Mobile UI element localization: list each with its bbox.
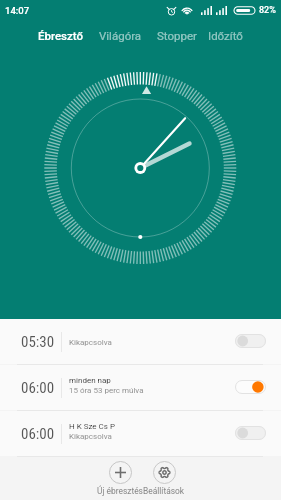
staticText: 05:30 — [21, 333, 55, 351]
staticText: 06:00 — [21, 379, 55, 397]
button[interactable]: Alarm enabled — [235, 380, 266, 394]
button[interactable]: Ébresztő — [37, 26, 85, 45]
button[interactable]: Settings — [143, 457, 185, 496]
button[interactable]: 06:00 — [0, 365, 281, 410]
staticText: Beállítások — [143, 486, 185, 496]
other: New alarm — [109, 461, 132, 484]
other: Settings — [153, 461, 176, 484]
staticText: 06:00 — [21, 425, 55, 443]
button[interactable]: New alarm — [97, 457, 143, 496]
staticText: minden nap — [69, 376, 111, 385]
staticText: Kikapcsolva — [69, 338, 112, 347]
button[interactable]: Stopper — [156, 26, 198, 45]
staticText: 14:07 — [5, 5, 30, 16]
staticText: Világóra — [99, 29, 142, 42]
staticText: 82% — [259, 5, 276, 16]
staticText: Kikapcsolva — [69, 432, 112, 441]
button[interactable]: Időzítő — [207, 26, 244, 45]
button[interactable]: Világóra — [98, 26, 143, 45]
button[interactable]: Alarm disabled — [235, 334, 266, 348]
button[interactable]: 05:30 — [0, 319, 281, 364]
staticText: Ébresztő — [38, 29, 84, 42]
staticText: H K Sze Cs P — [69, 422, 115, 431]
staticText: 15 óra 53 perc múlva — [69, 386, 144, 395]
staticText: Stopper — [157, 29, 197, 42]
button[interactable]: Alarm disabled — [235, 426, 266, 440]
staticText: Időzítő — [208, 29, 243, 42]
staticText: Új ébresztés — [97, 486, 143, 496]
button[interactable]: 06:00 — [0, 411, 281, 456]
